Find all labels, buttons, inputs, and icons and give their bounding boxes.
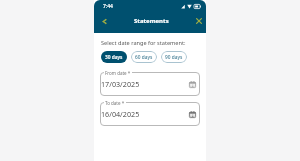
staticText: 90 days [165, 54, 183, 61]
staticText: To date * [105, 100, 125, 106]
staticText: 7:44 [103, 3, 113, 10]
staticText: 17/03/2025 [101, 79, 140, 89]
button[interactable]: Back [98, 15, 110, 27]
button[interactable]: Close [193, 15, 205, 27]
button[interactable]: 60 days [131, 51, 157, 63]
staticText: 16/04/2025 [101, 109, 140, 119]
staticText: Statements [134, 17, 169, 25]
button[interactable]: 16/04/2025 [100, 102, 200, 126]
staticText: 30 days [105, 54, 123, 61]
button[interactable]: 90 days [161, 51, 187, 63]
staticText: 60 days [135, 54, 153, 61]
button[interactable]: 30 days [101, 51, 127, 63]
staticText: From date * [105, 70, 131, 76]
staticText: Select date range for statement: [101, 39, 186, 47]
button[interactable]: 17/03/2025 [100, 72, 200, 96]
